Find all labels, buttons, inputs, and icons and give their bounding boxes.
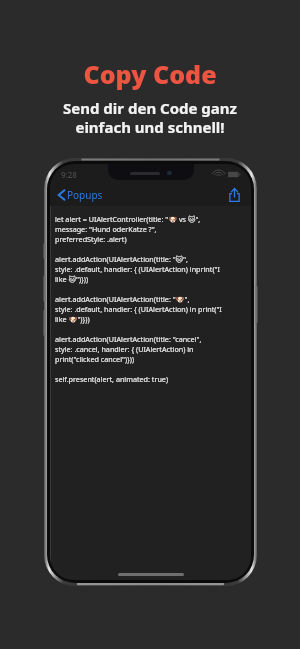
staticText: Send dir den Code ganz einfach und schne… [63, 98, 237, 137]
staticText: self.present(alert, animated: true) [55, 374, 169, 384]
staticText: Popups [67, 188, 103, 202]
button[interactable]: Share [224, 185, 244, 205]
staticText: alert.addAction(UIAlertAction(title: "🐱"… [55, 254, 220, 284]
staticText: let alert = UIAlertController(title: "🐶 … [55, 214, 201, 244]
staticText: 9:28 [61, 169, 77, 180]
button[interactable]: Popups [57, 186, 104, 204]
staticText: alert.addAction(UIAlertAction(title: "🐶"… [55, 294, 222, 324]
staticText: Copy Code [83, 57, 217, 91]
staticText: alert.addAction(UIAlertAction(title: "ca… [55, 334, 202, 364]
